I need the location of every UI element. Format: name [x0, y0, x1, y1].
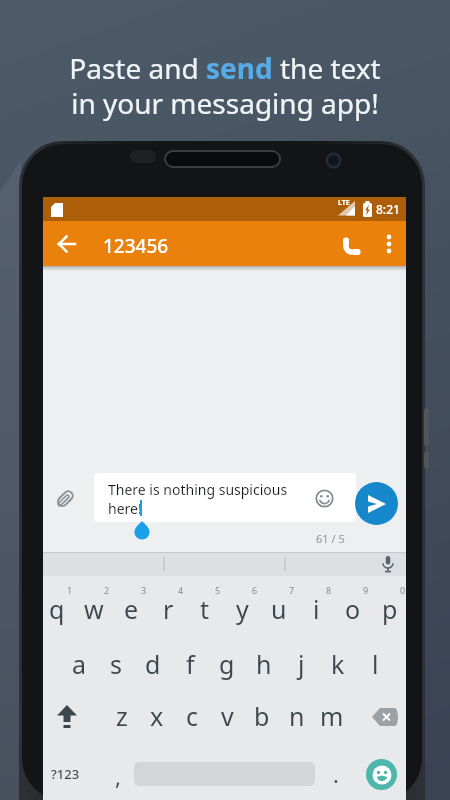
- staticText: l: [372, 647, 379, 681]
- staticText: e: [124, 592, 139, 626]
- button[interactable]: There is nothing suspicious here!: [94, 473, 356, 522]
- button[interactable]: p: [330, 599, 450, 619]
- staticText: t: [200, 592, 210, 626]
- button[interactable]: l: [315, 654, 435, 674]
- staticText: o: [345, 592, 361, 626]
- button[interactable]: .: [276, 764, 396, 784]
- staticText: p: [382, 592, 398, 626]
- button[interactable]: [375, 552, 401, 576]
- button[interactable]: z: [62, 706, 182, 726]
- button[interactable]: [373, 228, 405, 260]
- staticText: k: [331, 647, 345, 681]
- staticText: 1: [67, 584, 73, 596]
- staticText: 2: [104, 584, 110, 596]
- staticText: f: [186, 647, 195, 681]
- staticText: z: [116, 699, 128, 733]
- button[interactable]: c: [132, 706, 252, 726]
- staticText: 5: [215, 584, 221, 596]
- button[interactable]: b: [202, 706, 322, 726]
- staticText: m: [320, 699, 344, 733]
- button[interactable]: ,: [58, 766, 178, 786]
- staticText: b: [254, 699, 270, 733]
- staticText: r: [163, 592, 174, 626]
- staticText: ,: [115, 761, 121, 791]
- staticText: a: [72, 647, 87, 681]
- staticText: ?123: [51, 765, 80, 783]
- button[interactable]: e: [71, 599, 191, 619]
- button[interactable]: [51, 485, 79, 513]
- button[interactable]: u: [219, 599, 339, 619]
- staticText: .: [333, 759, 339, 789]
- staticText: 6: [252, 584, 258, 596]
- staticText: g: [219, 647, 235, 681]
- staticText: There is nothing suspicious here!: [108, 480, 288, 518]
- staticText: u: [271, 592, 287, 626]
- button[interactable]: h: [204, 654, 324, 674]
- button[interactable]: j: [241, 654, 361, 674]
- button[interactable]: y: [182, 599, 302, 619]
- button[interactable]: g: [167, 654, 287, 674]
- staticText: LTE: [338, 198, 350, 208]
- button[interactable]: t: [145, 599, 265, 619]
- button[interactable]: [51, 228, 83, 260]
- button[interactable]: [312, 486, 336, 510]
- button[interactable]: r: [108, 599, 228, 619]
- staticText: v: [221, 699, 234, 733]
- staticText: 3: [141, 584, 147, 596]
- staticText: d: [145, 647, 161, 681]
- staticText: 9: [363, 584, 369, 596]
- staticText: s: [110, 647, 122, 681]
- staticText: q: [49, 592, 65, 626]
- button[interactable]: n: [237, 706, 357, 726]
- staticText: in your messaging app!: [71, 84, 379, 122]
- staticText: j: [298, 647, 305, 681]
- staticText: c: [186, 699, 199, 733]
- staticText: n: [289, 699, 305, 733]
- button[interactable]: i: [256, 599, 376, 619]
- staticText: x: [150, 699, 164, 733]
- staticText: 4: [178, 584, 184, 596]
- staticText: y: [236, 592, 249, 626]
- button[interactable]: d: [93, 654, 213, 674]
- staticText: 123456: [103, 233, 169, 259]
- staticText: h: [256, 647, 272, 681]
- button[interactable]: w: [34, 599, 154, 619]
- button[interactable]: a: [19, 654, 139, 674]
- staticText: 8: [326, 584, 332, 596]
- button[interactable]: v: [167, 706, 287, 726]
- button[interactable]: s: [56, 654, 176, 674]
- staticText: i: [313, 592, 320, 626]
- button[interactable]: f: [130, 654, 250, 674]
- button[interactable]: k: [278, 654, 398, 674]
- button[interactable]: [336, 230, 368, 262]
- button[interactable]: m: [272, 706, 392, 726]
- button[interactable]: x: [97, 706, 217, 726]
- staticText: 0: [400, 584, 406, 596]
- button[interactable]: ?123: [5, 764, 125, 784]
- button[interactable]: [366, 759, 397, 790]
- staticText: Paste and send the text: [69, 49, 381, 87]
- button[interactable]: o: [293, 599, 413, 619]
- staticText: 61 / 5: [316, 531, 345, 546]
- button[interactable]: [49, 700, 85, 734]
- staticText: w: [84, 592, 104, 626]
- staticText: 8:21: [376, 201, 400, 217]
- button[interactable]: [355, 482, 398, 525]
- staticText: 7: [289, 584, 295, 596]
- button[interactable]: [368, 703, 402, 731]
- button[interactable]: q: [0, 599, 117, 619]
